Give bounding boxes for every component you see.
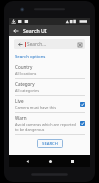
staticText: Search... — [27, 41, 47, 48]
button[interactable]: Navigate up — [12, 27, 20, 35]
staticText: SEARCH — [42, 141, 58, 147]
button[interactable]: Live — [9, 96, 90, 112]
other: Live checkbox, checked — [79, 101, 86, 108]
button[interactable]: Warn — [9, 113, 90, 134]
button[interactable]: Category — [9, 79, 90, 95]
staticText: Country — [15, 64, 33, 70]
other: Back — [17, 41, 23, 47]
staticText: Category — [15, 81, 35, 87]
staticText: Avoid cameras which are reported to be d… — [15, 122, 77, 132]
staticText: Camera must have this — [15, 105, 56, 110]
other: Warn checkbox, checked — [79, 120, 86, 127]
button[interactable]: Clear search — [77, 42, 82, 47]
staticText: Search options — [15, 53, 46, 59]
button[interactable]: Recent apps — [67, 156, 77, 166]
staticText: All locations — [15, 71, 37, 76]
button[interactable]: SEARCH — [37, 139, 63, 148]
button[interactable]: Back — [14, 39, 85, 49]
button[interactable]: Back — [22, 156, 32, 166]
staticText: Search UI — [23, 27, 47, 34]
button[interactable]: Home — [45, 156, 55, 166]
button[interactable]: Country — [9, 62, 90, 78]
staticText: All categories — [15, 88, 39, 93]
staticText: Live — [15, 98, 24, 104]
staticText: Warn — [15, 115, 27, 121]
